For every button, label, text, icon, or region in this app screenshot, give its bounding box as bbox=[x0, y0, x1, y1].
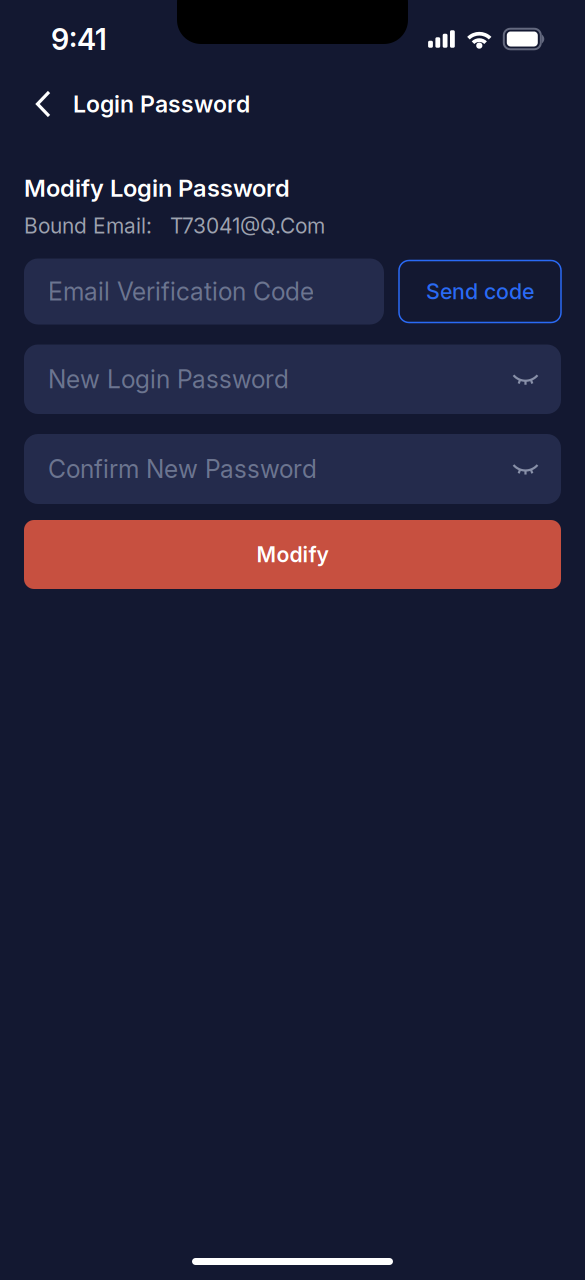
staticText: Email Verification Code bbox=[48, 277, 314, 306]
button[interactable]: Confirm New Password bbox=[24, 434, 561, 504]
button[interactable] bbox=[512, 462, 539, 476]
button[interactable]: Email Verification Code bbox=[24, 258, 384, 324]
staticText: Bound Email: T73041@Q.Com bbox=[24, 213, 325, 239]
staticText: 9:41 bbox=[51, 22, 107, 57]
button[interactable]: Modify bbox=[24, 520, 561, 589]
staticText: New Login Password bbox=[48, 364, 289, 394]
staticText: Confirm New Password bbox=[48, 454, 317, 484]
staticText: Login Password bbox=[73, 90, 250, 118]
button[interactable] bbox=[34, 90, 52, 118]
button[interactable]: Send code bbox=[399, 260, 561, 322]
staticText: Modify Login Password bbox=[24, 174, 290, 202]
staticText: Modify bbox=[256, 542, 328, 567]
button[interactable]: New Login Password bbox=[24, 344, 561, 414]
button[interactable] bbox=[512, 372, 539, 386]
staticText: Send code bbox=[426, 278, 534, 304]
